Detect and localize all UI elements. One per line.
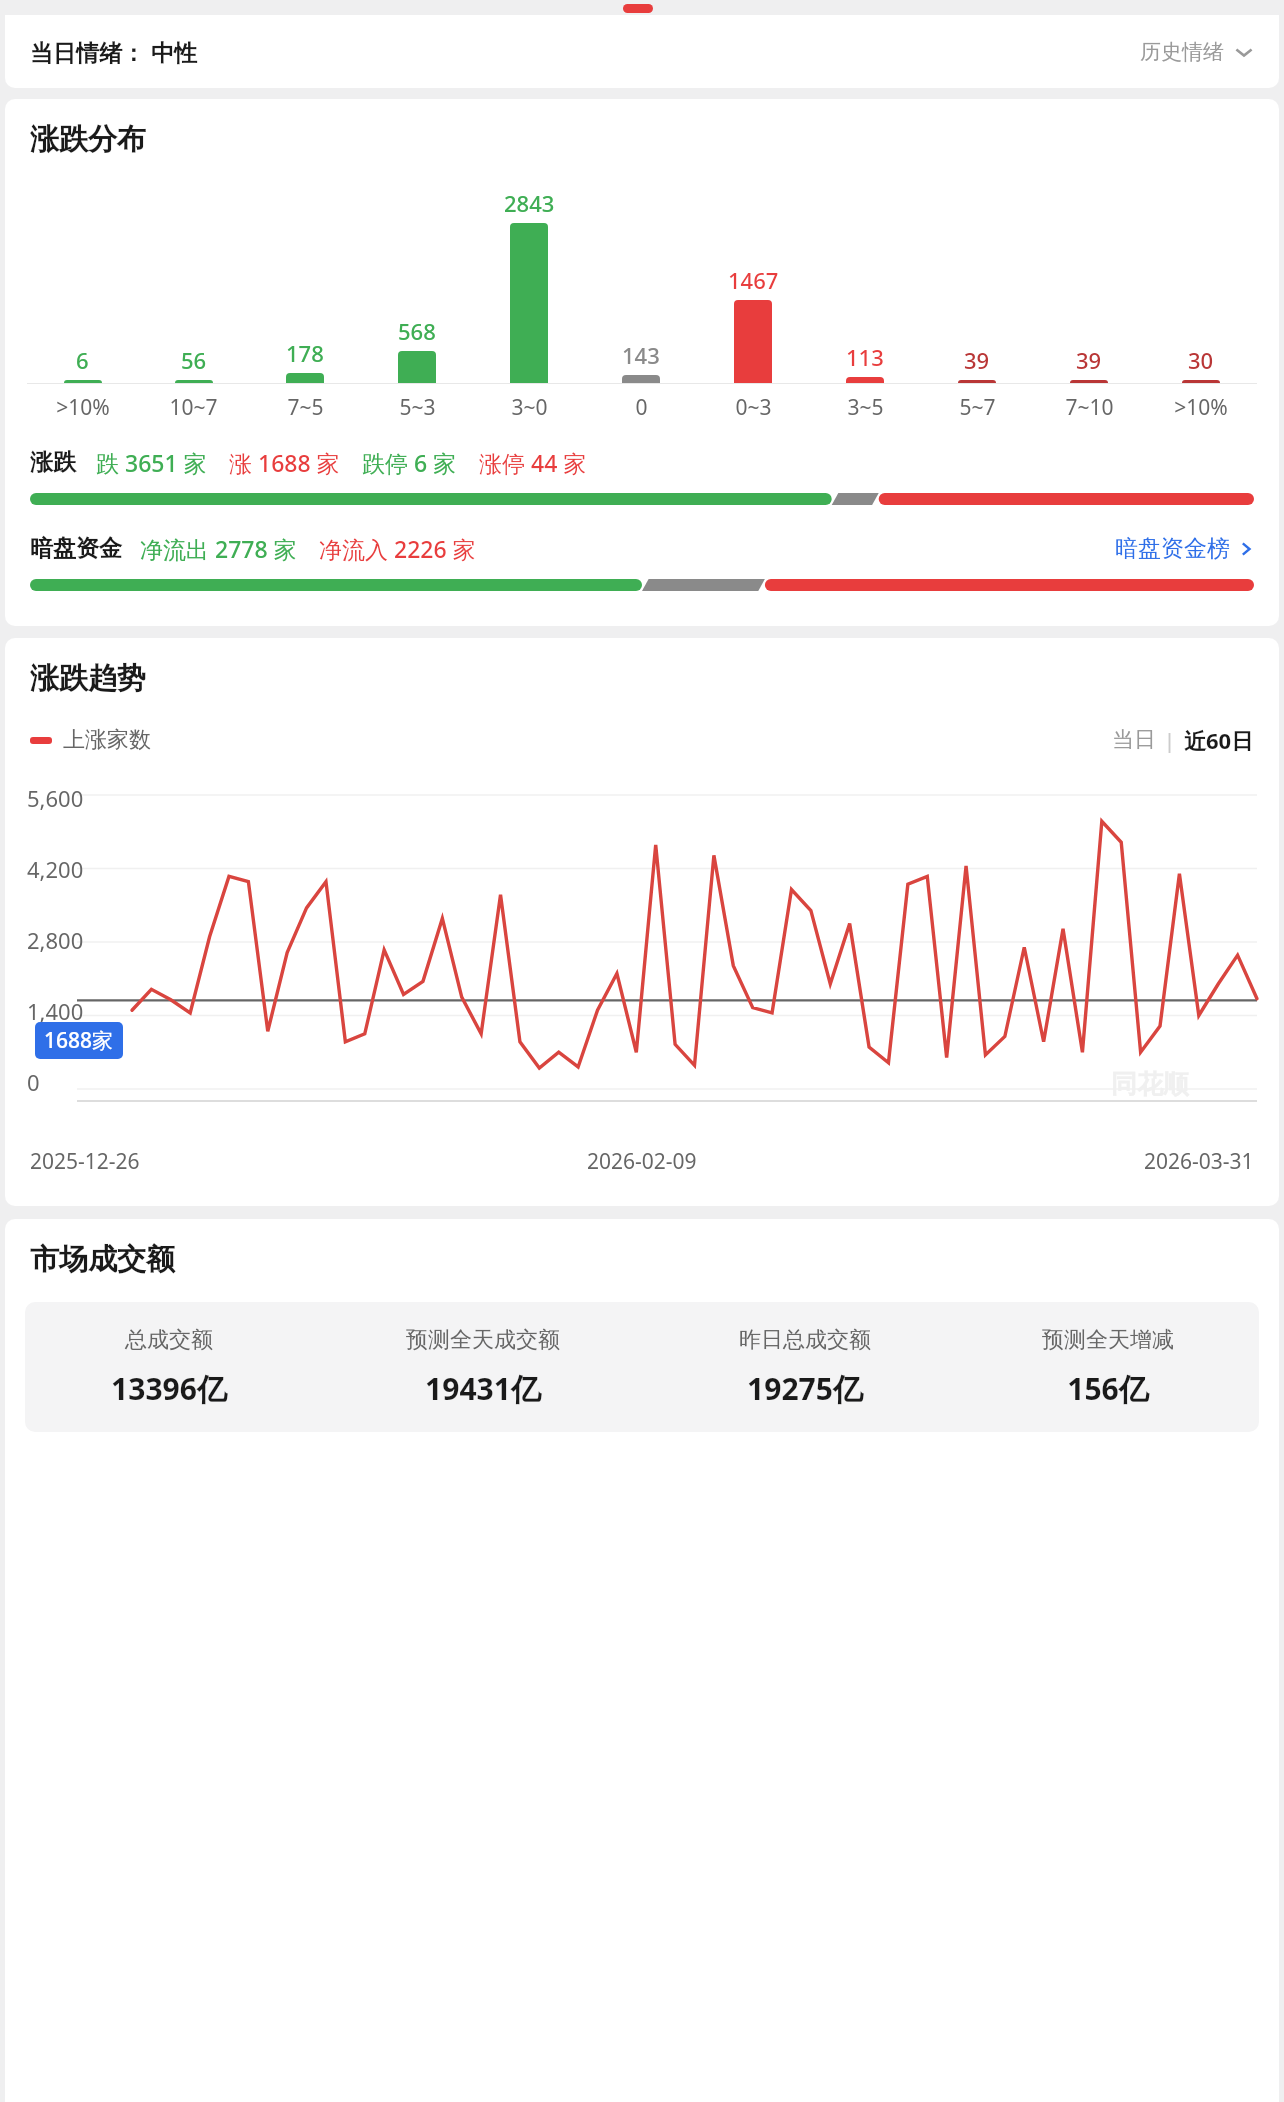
staticText: 2026-03-31: [1144, 1147, 1254, 1176]
staticText: 13396亿: [111, 1368, 227, 1409]
staticText: 156亿: [1067, 1368, 1149, 1409]
staticText: 178: [286, 338, 324, 368]
staticText: 2843: [504, 188, 555, 218]
staticText: 7~5: [287, 393, 324, 422]
staticText: 涨停 44 家: [479, 447, 587, 478]
staticText: >10%: [1174, 393, 1228, 422]
staticText: |: [1164, 727, 1176, 754]
staticText: 净流出 2778 家: [140, 533, 297, 564]
staticText: 2026-02-09: [587, 1147, 697, 1176]
staticText: 涨跌: [30, 448, 76, 477]
staticText: 市场成交额: [30, 1241, 175, 1278]
button[interactable]: 涨跌: [30, 447, 1254, 478]
staticText: 上涨家数: [63, 726, 151, 754]
staticText: 昨日总成交额: [739, 1326, 871, 1354]
staticText: 6: [76, 345, 89, 375]
staticText: 1467: [728, 265, 779, 295]
staticText: 3~0: [511, 393, 548, 422]
staticText: 涨跌趋势: [30, 660, 146, 697]
button[interactable]: 暗盘资金: [30, 533, 1254, 564]
staticText: 近60日: [1184, 725, 1254, 755]
staticText: 19431亿: [425, 1368, 541, 1409]
staticText: 预测全天增减: [1042, 1326, 1174, 1354]
staticText: 暗盘资金: [30, 534, 122, 563]
staticText: 净流入 2226 家: [319, 533, 476, 564]
staticText: 7~10: [1065, 393, 1114, 422]
staticText: 143: [622, 340, 660, 370]
button[interactable]: 当日: [1112, 726, 1156, 754]
staticText: 暗盘资金榜: [1115, 534, 1230, 563]
staticText: 19275亿: [747, 1368, 863, 1409]
staticText: 113: [846, 342, 884, 372]
staticText: 1688家: [44, 1026, 114, 1055]
staticText: 5~7: [959, 393, 996, 422]
staticText: 0: [635, 393, 648, 422]
staticText: 2025-12-26: [30, 1147, 140, 1176]
staticText: 总成交额: [125, 1326, 213, 1354]
staticText: 5~3: [399, 393, 436, 422]
button[interactable]: 近60日: [1184, 725, 1254, 755]
staticText: 2,800: [27, 925, 84, 955]
staticText: 跌 3651 家: [96, 447, 207, 478]
button[interactable]: 当日情绪： 中性: [5, 15, 1279, 88]
staticText: 39: [964, 345, 990, 375]
staticText: 3~5: [847, 393, 884, 422]
staticText: 5,600: [27, 783, 84, 813]
staticText: 30: [1188, 345, 1214, 375]
staticText: 当日: [1112, 726, 1156, 754]
staticText: 涨 1688 家: [229, 447, 340, 478]
staticText: 10~7: [169, 393, 218, 422]
staticText: 4,200: [27, 854, 84, 884]
staticText: 1,400: [27, 996, 84, 1026]
staticText: 568: [398, 316, 436, 346]
staticText: 0: [27, 1067, 40, 1097]
staticText: >10%: [56, 393, 110, 422]
staticText: 39: [1076, 345, 1102, 375]
staticText: 56: [181, 345, 207, 375]
staticText: 当日情绪： 中性: [30, 36, 197, 67]
staticText: 跌停 6 家: [362, 447, 457, 478]
staticText: 历史情绪: [1140, 39, 1224, 65]
staticText: 涨跌分布: [30, 121, 146, 158]
staticText: 0~3: [735, 393, 772, 422]
staticText: 预测全天成交额: [406, 1326, 560, 1354]
staticText: 同花顺: [1111, 1068, 1189, 1101]
